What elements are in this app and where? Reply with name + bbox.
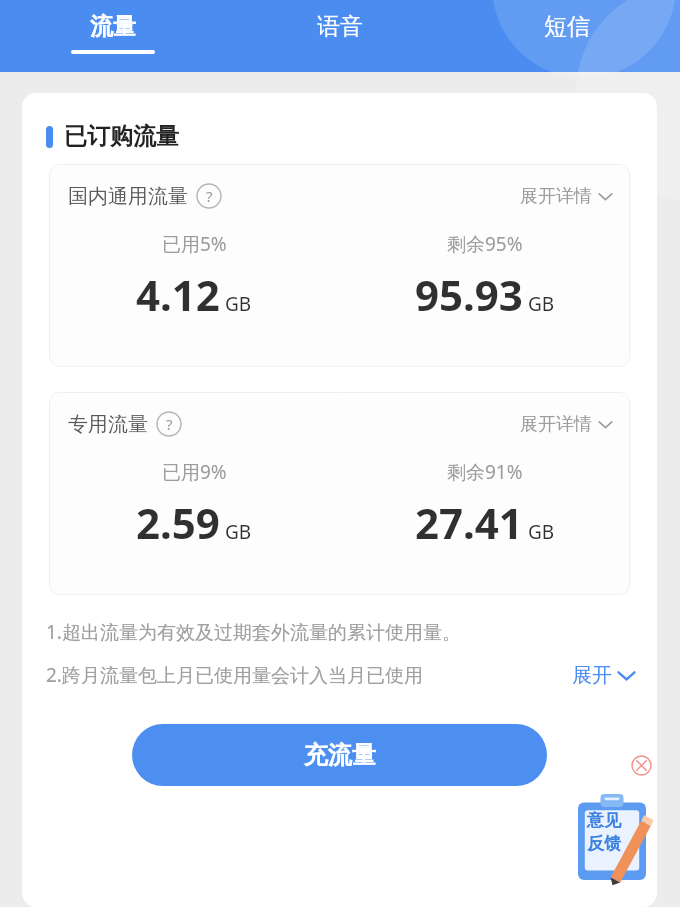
staticText: 充流量 bbox=[304, 740, 376, 770]
button[interactable]: 展开详情 bbox=[520, 185, 613, 208]
staticText: 2.59 bbox=[136, 494, 220, 551]
staticText: 已订购流量 bbox=[64, 122, 179, 151]
button[interactable]: 短信 bbox=[453, 0, 680, 72]
staticText: 剩余95% bbox=[447, 231, 523, 257]
staticText: GB bbox=[528, 519, 555, 545]
button[interactable]: 展开 bbox=[572, 663, 636, 688]
staticText: 剩余91% bbox=[447, 459, 523, 485]
staticText: 语音 bbox=[317, 12, 363, 41]
staticText: 意见 bbox=[587, 810, 621, 831]
button[interactable]: 关闭意见反馈 bbox=[631, 755, 652, 776]
button[interactable]: 国内通用流量 bbox=[49, 164, 630, 367]
staticText: 2.跨月流量包上月已使用量会计入当月已使用 bbox=[46, 662, 423, 688]
staticText: 已用9% bbox=[162, 459, 227, 485]
staticText: 展开详情 bbox=[520, 185, 592, 208]
staticText: 流量 bbox=[90, 12, 136, 41]
staticText: GB bbox=[225, 291, 252, 317]
staticText: 1.超出流量为有效及过期套外流量的累计使用量。 bbox=[46, 619, 461, 645]
button[interactable]: 已订购流量 bbox=[46, 122, 657, 151]
staticText: 短信 bbox=[544, 12, 590, 41]
staticText: 展开 bbox=[572, 663, 612, 688]
staticText: 国内通用流量 bbox=[68, 184, 188, 209]
staticText: GB bbox=[528, 291, 555, 317]
staticText: 已用5% bbox=[162, 231, 227, 257]
staticText: 专用流量 bbox=[68, 412, 148, 437]
staticText: 95.93 bbox=[415, 266, 523, 323]
staticText: 反馈 bbox=[587, 833, 621, 854]
staticText: 27.41 bbox=[415, 494, 523, 551]
staticText: GB bbox=[225, 519, 252, 545]
staticText: 展开详情 bbox=[520, 413, 592, 436]
button[interactable]: 语音 bbox=[226, 0, 453, 72]
staticText: ? bbox=[206, 186, 213, 206]
button[interactable]: 展开详情 bbox=[520, 413, 613, 436]
button[interactable]: 充流量 bbox=[132, 724, 547, 786]
staticText: ? bbox=[166, 414, 173, 434]
button[interactable]: 流量 bbox=[0, 0, 226, 72]
button[interactable]: 意见反馈 bbox=[578, 794, 646, 880]
staticText: 4.12 bbox=[136, 266, 220, 323]
button[interactable]: 专用流量 bbox=[49, 392, 630, 595]
